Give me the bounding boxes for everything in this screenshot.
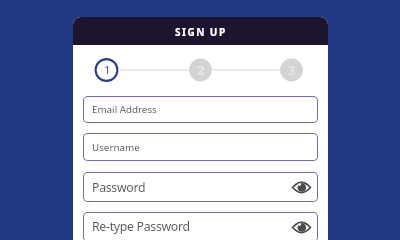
staticText: Email Address bbox=[92, 103, 157, 116]
button[interactable]: Password bbox=[83, 172, 318, 202]
button[interactable]: Email Address bbox=[83, 96, 318, 123]
button[interactable]: SIGN UP bbox=[73, 17, 328, 45]
button[interactable]: Username bbox=[83, 133, 318, 161]
staticText: Username bbox=[92, 141, 140, 154]
staticText: 2 bbox=[197, 61, 205, 79]
staticText: 1 bbox=[104, 62, 111, 78]
staticText: Password bbox=[92, 179, 146, 196]
button[interactable]: Re-type Password bbox=[83, 212, 318, 240]
staticText: SIGN UP bbox=[175, 25, 227, 39]
staticText: Re-type Password bbox=[92, 218, 190, 235]
staticText: 3 bbox=[288, 61, 296, 79]
